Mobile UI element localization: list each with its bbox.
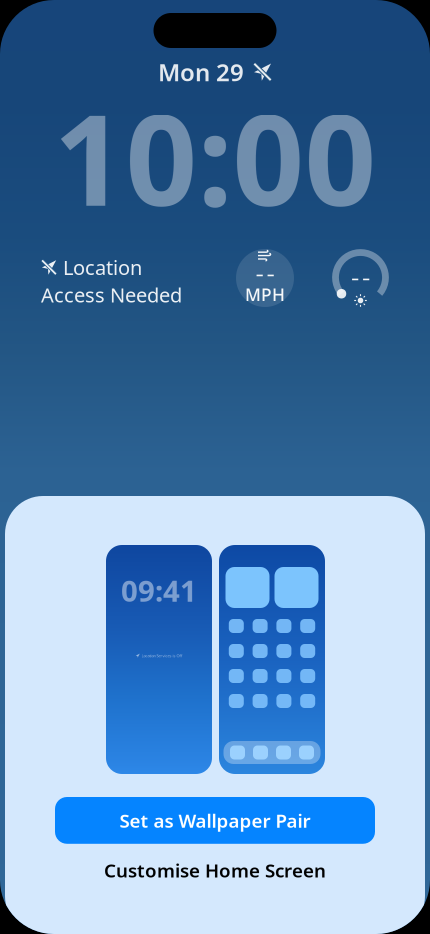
button[interactable]: Set as Wallpaper Pair — [55, 797, 375, 844]
staticText: Customise Home Screen — [104, 858, 326, 883]
staticText: 09:41 — [121, 571, 197, 610]
staticText: Location — [63, 254, 142, 281]
staticText: 10:00 — [53, 74, 376, 240]
staticText: MPH — [245, 283, 285, 306]
staticText: Location Services is Off — [141, 653, 182, 658]
staticText: Mon 29 — [158, 56, 244, 88]
staticText: Access Needed — [41, 282, 182, 308]
button[interactable]: Customise Home Screen — [80, 849, 350, 892]
staticText: Set as Wallpaper Pair — [119, 808, 310, 833]
staticText: – – — [351, 268, 369, 287]
staticText: – – — [256, 264, 274, 283]
